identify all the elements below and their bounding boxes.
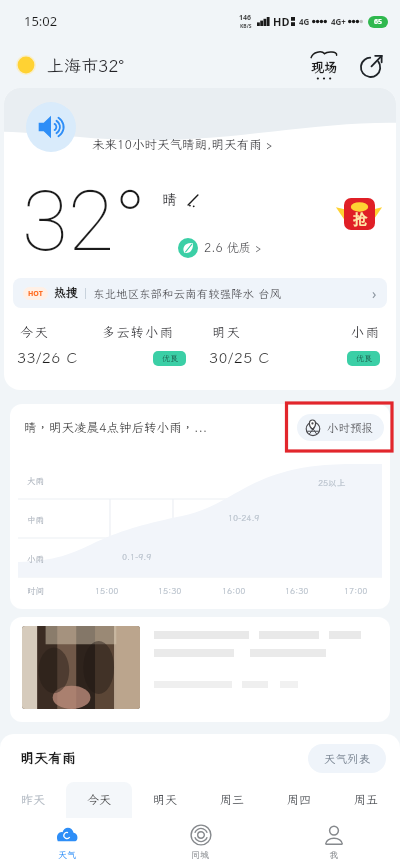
staticText: 15:02 <box>24 12 58 30</box>
button[interactable]: 今天 <box>66 782 132 818</box>
staticText: 明天 <box>212 324 241 341</box>
staticText: 0.1-9.9 <box>122 551 152 562</box>
button[interactable]: 分享 <box>356 50 386 80</box>
button[interactable]: 明天 <box>132 782 199 818</box>
staticText: 32° <box>22 172 147 270</box>
staticText: › <box>372 284 377 303</box>
staticText: 4G+ <box>331 16 346 27</box>
staticText: 小雨 <box>27 553 45 564</box>
staticText: 今天 <box>87 792 112 808</box>
staticText: HD <box>273 14 290 29</box>
staticText: 30/25 C <box>209 348 270 368</box>
staticText: 65 <box>374 17 383 27</box>
staticText: HOT <box>28 289 43 299</box>
staticText: 东北地区东部和云南有较强降水 台风 <box>93 286 282 301</box>
staticText: KB/S <box>240 23 252 30</box>
staticText: 昨天 <box>21 792 46 808</box>
staticText: 同城 <box>191 849 210 861</box>
staticText: 大雨 <box>27 475 45 486</box>
staticText: 小雨 <box>351 324 380 341</box>
staticText: 17:00 <box>344 585 368 596</box>
staticText: 周三 <box>220 792 245 808</box>
staticText: 明天 <box>153 792 178 808</box>
staticText: 抢 <box>353 211 367 229</box>
staticText: 明天有雨 <box>20 749 76 767</box>
staticText: 未来10小时天气晴朗,明天有雨 › <box>92 136 273 152</box>
staticText: 现场 <box>311 59 338 76</box>
staticText: 小时预报 <box>327 420 373 435</box>
button[interactable] <box>14 322 194 374</box>
button[interactable]: 语音播报 <box>26 102 76 152</box>
staticText: 16:30 <box>285 585 309 596</box>
button[interactable]: 抢红包 <box>344 198 375 230</box>
button[interactable]: 同城 <box>134 818 267 867</box>
staticText: 天气列表 <box>324 751 370 766</box>
button[interactable]: 天气 <box>0 818 134 867</box>
staticText: 晴，明天凌晨4点钟后转小雨，... <box>24 419 208 435</box>
button[interactable]: HOT <box>13 278 387 308</box>
button[interactable] <box>204 322 390 374</box>
staticText: 146 <box>239 13 252 23</box>
button[interactable]: 现场直播 <box>306 49 342 81</box>
staticText: 时间 <box>27 585 45 596</box>
button[interactable] <box>10 617 390 722</box>
button[interactable]: 小时预报 <box>297 414 384 441</box>
button[interactable]: 昨天 <box>0 782 66 818</box>
staticText: 中雨 <box>27 514 45 525</box>
staticText: 上海市32° <box>47 54 124 76</box>
button[interactable]: 周五 <box>333 782 400 818</box>
button[interactable]: 周四 <box>266 782 333 818</box>
staticText: 多云转小雨 <box>102 324 175 341</box>
staticText: 热搜 <box>54 285 79 301</box>
staticText: 优良 <box>162 353 178 364</box>
staticText: 晴 <box>162 190 178 210</box>
button[interactable]: 天气列表 <box>308 744 386 773</box>
staticText: 15:30 <box>158 585 182 596</box>
staticText: 周四 <box>287 792 312 808</box>
button[interactable]: 2.6 优质 › <box>178 238 262 258</box>
staticText: 15:00 <box>95 585 119 596</box>
staticText: 今天 <box>20 324 49 341</box>
staticText: 优良 <box>356 353 372 364</box>
staticText: 25以上 <box>318 477 346 488</box>
staticText: 4G <box>299 16 310 27</box>
button[interactable]: 周三 <box>199 782 266 818</box>
staticText: 我 <box>329 849 339 861</box>
staticText: 33/26 C <box>17 348 78 368</box>
staticText: 10-24.9 <box>228 512 260 523</box>
staticText: 天气 <box>58 849 77 861</box>
button[interactable]: 我 <box>267 818 400 867</box>
staticText: 2.6 优质 › <box>204 240 262 256</box>
staticText: 周五 <box>354 792 379 808</box>
staticText: 16:00 <box>222 585 246 596</box>
